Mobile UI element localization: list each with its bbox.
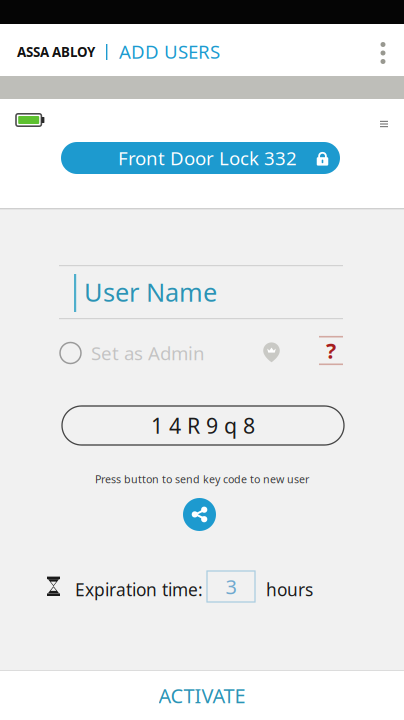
staticText: ASSA ABLOY: [17, 43, 95, 61]
staticText: 1 4 R 9 q 8: [151, 411, 255, 440]
staticText: Press button to send key code to new use…: [95, 472, 309, 486]
staticText: User Name: [84, 275, 217, 309]
staticText: ADD USERS: [119, 39, 220, 64]
button[interactable]: Front Door Lock 332: [61, 142, 340, 174]
staticText: Set as Admin: [91, 341, 205, 365]
button[interactable]: Set as Admin: [60, 340, 205, 366]
button[interactable]: ACTIVATE: [0, 671, 404, 720]
button[interactable]: More options: [366, 27, 400, 79]
staticText: ?: [326, 336, 336, 365]
button[interactable]: Lock menu: [371, 113, 397, 135]
staticText: Expiration time:: [75, 578, 203, 601]
staticText: 3: [225, 573, 236, 600]
button[interactable]: Help: [319, 336, 343, 365]
staticText: hours: [266, 578, 313, 601]
button[interactable]: Share key code: [183, 498, 216, 531]
staticText: ACTIVATE: [158, 682, 245, 709]
staticText: Front Door Lock 332: [118, 146, 297, 170]
